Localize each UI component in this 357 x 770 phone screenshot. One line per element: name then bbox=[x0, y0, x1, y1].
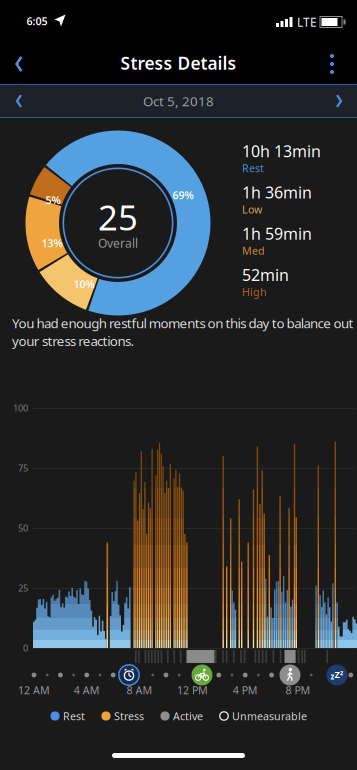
staticText: 4 PM bbox=[233, 683, 258, 697]
staticText: 25 bbox=[98, 194, 138, 240]
staticText: Med bbox=[242, 243, 265, 258]
staticText: 69% bbox=[172, 188, 193, 202]
staticText: Oct 5, 2018 bbox=[143, 92, 214, 110]
staticText: 0 bbox=[23, 642, 28, 654]
button[interactable]: Back bbox=[2, 46, 36, 82]
staticText: 4 AM bbox=[74, 683, 100, 697]
staticText: 12 PM bbox=[177, 683, 208, 697]
staticText: Active bbox=[173, 709, 203, 723]
staticText: 10% bbox=[73, 277, 94, 291]
staticText: 75 bbox=[18, 462, 28, 474]
staticText: 8 PM bbox=[285, 683, 310, 697]
staticText: 12 AM bbox=[18, 683, 50, 697]
staticText: z bbox=[340, 668, 343, 677]
staticText: LTE bbox=[297, 14, 317, 30]
staticText: 6:05 bbox=[26, 14, 47, 28]
staticText: 50 bbox=[18, 522, 28, 534]
button[interactable]: Cycling activity bbox=[191, 664, 213, 686]
staticText: Rest bbox=[63, 709, 85, 723]
staticText: 13% bbox=[41, 236, 62, 250]
staticText: 8 AM bbox=[127, 683, 153, 697]
staticText: Stress bbox=[114, 709, 144, 723]
staticText: Stress Details bbox=[120, 51, 236, 74]
button[interactable]: Walking activity bbox=[279, 664, 301, 686]
staticText: 1h 36min bbox=[242, 182, 312, 203]
staticText: 5% bbox=[45, 193, 60, 207]
staticText: High bbox=[242, 285, 267, 299]
staticText: 25 bbox=[18, 582, 28, 594]
staticText: Low bbox=[242, 202, 262, 216]
staticText: You had enough restful moments on this d… bbox=[12, 314, 354, 350]
button[interactable]: Timed activity bbox=[118, 664, 140, 686]
button[interactable]: More options bbox=[315, 46, 349, 82]
staticText: z bbox=[330, 671, 334, 682]
staticText: Unmeasurable bbox=[232, 709, 307, 723]
staticText: Z bbox=[334, 668, 339, 681]
button[interactable]: Sleep bbox=[326, 664, 348, 686]
staticText: 10h 13min bbox=[242, 140, 321, 162]
staticText: Overall bbox=[98, 235, 138, 251]
staticText: 52min bbox=[242, 264, 289, 285]
staticText: 1h 59min bbox=[242, 223, 312, 244]
staticText: Rest bbox=[242, 161, 264, 175]
button[interactable]: Next day bbox=[324, 86, 354, 116]
button[interactable]: Previous day bbox=[4, 86, 34, 116]
staticText: 100 bbox=[13, 402, 28, 414]
